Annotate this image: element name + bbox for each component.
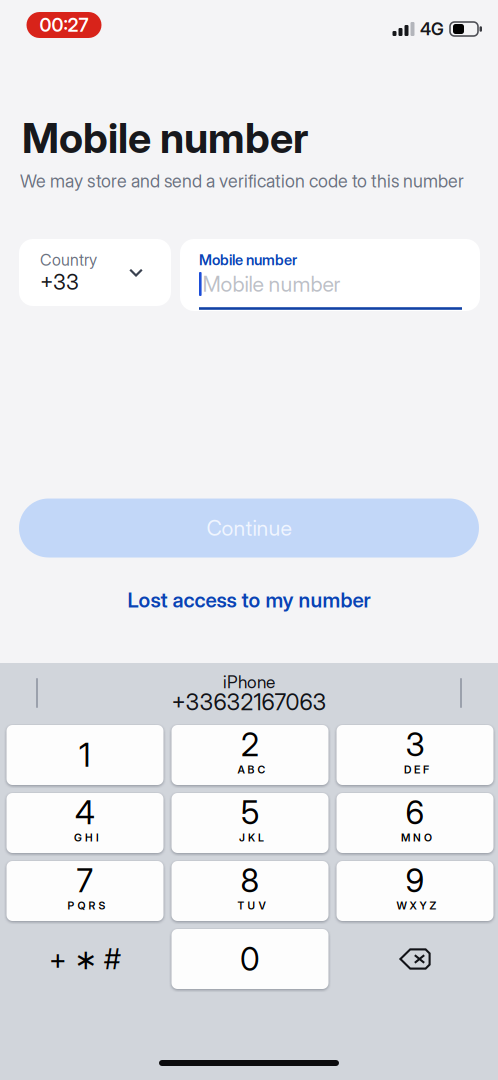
- button[interactable]: Continue: [19, 498, 479, 557]
- button[interactable]: 3: [336, 725, 493, 785]
- button[interactable]: 0: [171, 929, 328, 989]
- staticText: Country: [40, 250, 97, 270]
- staticText: 9: [405, 861, 424, 900]
- staticText: + ∗ #: [49, 942, 121, 976]
- staticText: Mobile number: [22, 113, 308, 163]
- staticText: 00:27: [39, 14, 88, 36]
- staticText: MNO: [401, 831, 432, 844]
- staticText: 1: [79, 736, 91, 774]
- staticText: PQRS: [67, 899, 105, 912]
- button[interactable]: Delete: [336, 929, 493, 989]
- staticText: 6: [405, 793, 424, 832]
- staticText: +33: [40, 269, 79, 295]
- staticText: ABC: [237, 763, 265, 776]
- staticText: 2: [241, 725, 259, 764]
- staticText: 4: [75, 793, 95, 832]
- staticText: TUV: [237, 899, 265, 912]
- staticText: 5: [241, 793, 259, 832]
- staticText: 4G: [420, 18, 444, 39]
- button[interactable]: 9: [336, 861, 493, 921]
- staticText: +33632167063: [171, 688, 326, 716]
- staticText: 8: [240, 861, 259, 900]
- button[interactable]: + ∗ #: [6, 929, 163, 989]
- staticText: We may store and send a verification cod…: [20, 170, 464, 192]
- staticText: WXYZ: [396, 899, 436, 912]
- button[interactable]: Country: [19, 239, 171, 306]
- button[interactable]: Lost access to my number: [19, 576, 479, 624]
- staticText: Lost access to my number: [127, 588, 370, 612]
- button[interactable]: 2: [171, 725, 328, 785]
- staticText: Mobile number: [203, 271, 341, 297]
- staticText: 7: [76, 861, 93, 900]
- button[interactable]: 4: [6, 793, 163, 853]
- staticText: Mobile number: [199, 251, 297, 269]
- staticText: 3: [405, 725, 424, 764]
- button[interactable]: 6: [336, 793, 493, 853]
- staticText: iPhone: [223, 671, 275, 692]
- staticText: JKL: [239, 831, 264, 844]
- staticText: GHI: [74, 831, 99, 844]
- staticText: 0: [240, 940, 260, 978]
- staticText: Continue: [206, 515, 291, 541]
- staticText: DEF: [404, 763, 429, 776]
- button[interactable]: 7: [6, 861, 163, 921]
- button[interactable]: 8: [171, 861, 328, 921]
- button[interactable]: 5: [171, 793, 328, 853]
- button[interactable]: 1: [6, 725, 163, 785]
